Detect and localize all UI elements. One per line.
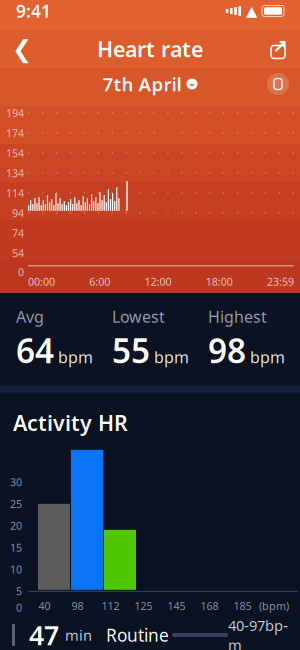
button[interactable]: Share — [258, 29, 298, 69]
staticText: 194 — [6, 106, 24, 120]
staticText: ▲ — [246, 3, 257, 19]
button[interactable]: 47 — [0, 613, 300, 650]
staticText: ↗ — [272, 36, 288, 57]
staticText: 185 — [233, 599, 251, 613]
button[interactable]: Back — [2, 29, 42, 69]
staticText: 40 — [38, 599, 50, 613]
staticText: Highest — [208, 306, 267, 327]
staticText: 15 — [10, 540, 22, 555]
staticText: 20 — [10, 519, 22, 533]
staticText: 114 — [6, 186, 24, 200]
staticText: 25 — [10, 497, 22, 511]
staticText: (bpm) — [259, 599, 289, 613]
staticText: 154 — [6, 146, 24, 160]
button[interactable]: Device — [259, 69, 297, 99]
staticText: 10 — [10, 562, 22, 576]
staticText: 7th April — [102, 72, 181, 96]
staticText: 00:00 — [28, 274, 55, 289]
staticText: bpm — [154, 346, 189, 368]
staticText: bpm — [250, 346, 285, 368]
staticText: 0 — [18, 265, 24, 279]
staticText: Activity HR — [13, 408, 128, 437]
staticText: 94 — [12, 206, 24, 220]
staticText: 18:00 — [206, 274, 233, 289]
staticText: 55 — [112, 328, 150, 372]
staticText: 74 — [12, 226, 24, 240]
staticText: 98 — [71, 599, 83, 613]
staticText: 98 — [208, 328, 246, 372]
staticText: bpm — [58, 346, 93, 368]
staticText: 12:00 — [144, 274, 171, 289]
staticText: 54 — [12, 246, 24, 260]
staticText: ❮ — [12, 35, 32, 63]
staticText: 0 — [16, 600, 22, 615]
staticText: 112 — [101, 599, 119, 613]
staticText: 9:41 — [16, 0, 51, 22]
staticText: 6:00 — [89, 274, 110, 289]
staticText: 47 — [29, 617, 59, 650]
staticText: Avg — [16, 306, 44, 327]
staticText: 174 — [6, 126, 24, 140]
staticText: min — [65, 625, 92, 645]
staticText: 168 — [200, 599, 218, 613]
staticText: ⌄ — [187, 76, 196, 88]
button[interactable]: 7th April — [92, 68, 207, 100]
staticText: 134 — [6, 166, 24, 180]
staticText: 125 — [134, 599, 152, 613]
staticText: 23:59 — [267, 274, 294, 289]
staticText: 40-97bpm — [228, 615, 288, 650]
staticText: 30 — [10, 475, 22, 489]
staticText: Lowest — [112, 306, 165, 327]
staticText: Routine — [106, 623, 169, 646]
staticText: 5 — [16, 584, 22, 598]
staticText: 145 — [167, 599, 185, 613]
staticText: 64 — [16, 328, 54, 372]
staticText: Heart rate — [97, 35, 203, 63]
